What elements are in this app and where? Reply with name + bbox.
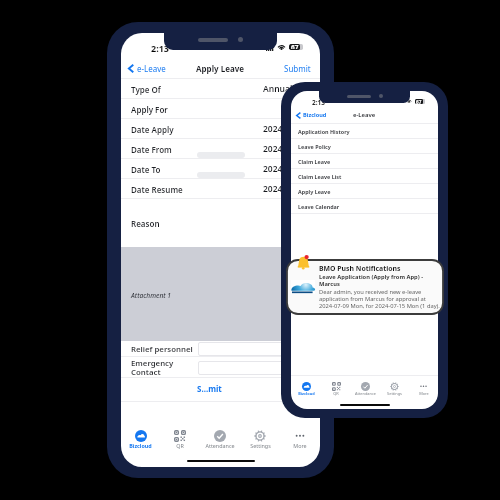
staticText: Leave Application (Apply from App) - Mar… — [319, 273, 424, 288]
staticText: Bizcloud — [298, 391, 315, 396]
staticText: 2024-07-15 — [263, 163, 308, 175]
staticText: Apply Leave — [298, 188, 331, 195]
staticText: Date From — [131, 144, 172, 155]
staticText: Settings — [250, 442, 271, 449]
staticText: More — [293, 442, 307, 449]
staticText: Apply Leave — [196, 63, 245, 74]
staticText: QR — [176, 442, 184, 449]
button[interactable]: QR — [321, 382, 351, 396]
staticText: Emergency Contact — [131, 358, 174, 377]
staticText: Apply For — [131, 104, 168, 115]
button[interactable]: e-Leave — [128, 63, 166, 74]
button[interactable]: Claim Leave List — [291, 169, 438, 184]
staticText: 2:13 — [151, 42, 169, 54]
staticText: S...mit — [197, 383, 222, 394]
button[interactable]: More — [280, 430, 320, 449]
button[interactable]: Apply Leave — [291, 184, 438, 199]
staticText: 2024-07-09 — [263, 123, 308, 135]
staticText: Leave Calendar — [298, 203, 340, 210]
staticText: Settings — [387, 391, 402, 396]
button[interactable]: Bizcloud — [296, 111, 327, 119]
staticText: Annually Leave — [263, 83, 320, 95]
staticText: Dear admin, you received new e-leave app… — [319, 288, 440, 310]
staticText: QR — [333, 391, 339, 396]
staticText: Claim Leave — [298, 158, 331, 165]
button[interactable]: Bizcloud — [291, 382, 321, 396]
button[interactable]: Settings — [380, 382, 409, 396]
staticText: Bizcloud — [303, 111, 327, 119]
staticText: Submit — [284, 63, 311, 74]
staticText: Date To — [131, 164, 161, 175]
staticText: Reason — [131, 218, 160, 229]
staticText: Type Of — [131, 84, 161, 95]
button[interactable]: Leave Calendar — [291, 199, 438, 214]
staticText: Application History — [298, 128, 350, 135]
button[interactable]: Attendance — [351, 382, 380, 396]
staticText: Attendance — [205, 442, 235, 449]
staticText: 2:13 — [312, 98, 325, 107]
staticText: 2024-07-15 — [263, 143, 308, 155]
staticText: Bizcloud — [129, 442, 152, 449]
button[interactable]: Application History — [291, 124, 438, 139]
staticText: 2024-07-16 — [263, 183, 308, 195]
staticText: BMO Push Notifications — [319, 264, 401, 273]
staticText: Attachment 1 — [131, 291, 171, 300]
staticText: Date Resume — [131, 184, 183, 195]
button[interactable]: QR — [160, 430, 200, 449]
staticText: 67 — [291, 44, 299, 49]
staticText: Attendance — [355, 391, 376, 396]
staticText: e-Leave — [353, 111, 376, 119]
button[interactable]: Bizcloud — [121, 430, 160, 449]
staticText: Relief personnel — [131, 344, 193, 355]
staticText: Claim Leave List — [298, 173, 342, 180]
staticText: Leave Policy — [298, 143, 331, 150]
button[interactable]: Settings — [240, 430, 280, 449]
button[interactable]: Attendance — [200, 430, 240, 449]
staticText: Date Apply — [131, 124, 174, 135]
button[interactable]: More — [409, 382, 438, 396]
staticText: More — [419, 391, 429, 396]
button[interactable]: Submit — [284, 63, 311, 74]
button[interactable]: Leave Policy — [291, 139, 438, 154]
staticText: e-Leave — [137, 63, 166, 74]
button[interactable]: S...mit — [121, 378, 320, 400]
button[interactable]: Claim Leave — [291, 154, 438, 169]
staticText: 67 — [416, 99, 422, 104]
